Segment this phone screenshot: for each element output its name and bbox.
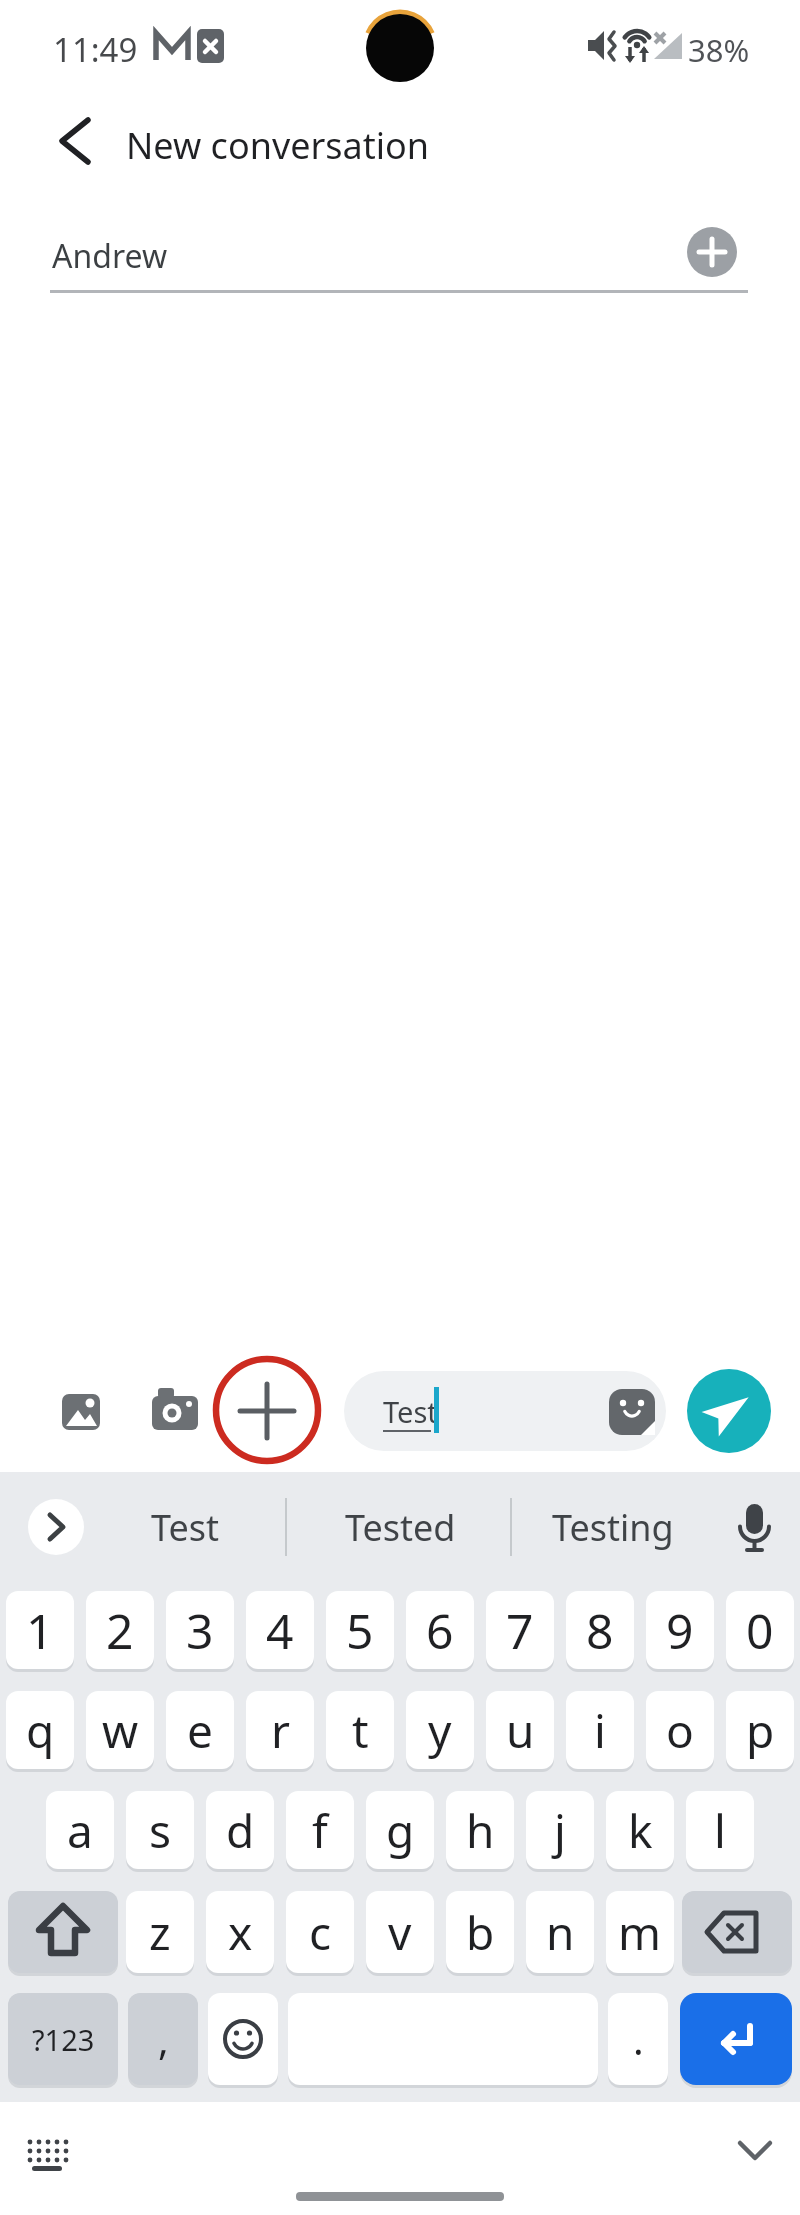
staticText: 4: [266, 1598, 294, 1663]
staticText: New conversation: [126, 121, 430, 170]
staticText: 1: [26, 1598, 54, 1663]
button[interactable]: w: [86, 1691, 154, 1769]
staticText: h: [466, 1799, 495, 1862]
staticText: Testing: [552, 1503, 674, 1552]
staticText: 8: [586, 1598, 614, 1663]
button[interactable]: 0: [726, 1591, 794, 1669]
button[interactable]: [44, 110, 108, 174]
button[interactable]: ?123: [8, 1993, 118, 2085]
button[interactable]: b: [446, 1891, 514, 1973]
button[interactable]: [28, 1499, 84, 1555]
staticText: Test: [383, 1392, 438, 1431]
button[interactable]: h: [446, 1791, 514, 1869]
staticText: r: [271, 1699, 290, 1762]
button[interactable]: i: [566, 1691, 634, 1769]
staticText: 9: [666, 1598, 694, 1663]
button[interactable]: f: [286, 1791, 354, 1869]
staticText: x: [228, 1901, 253, 1964]
button[interactable]: e: [166, 1691, 234, 1769]
staticText: g: [386, 1799, 415, 1862]
staticText: 0: [746, 1598, 774, 1663]
button[interactable]: s: [126, 1791, 194, 1869]
staticText: d: [226, 1799, 255, 1862]
button[interactable]: [208, 1993, 278, 2085]
button[interactable]: [149, 1386, 201, 1438]
staticText: ,: [158, 2012, 169, 2066]
button[interactable]: [680, 1993, 792, 2085]
staticText: f: [312, 1799, 328, 1862]
button[interactable]: 4: [246, 1591, 314, 1669]
button[interactable]: j: [526, 1791, 594, 1869]
button[interactable]: c: [286, 1891, 354, 1973]
button[interactable]: 2: [86, 1591, 154, 1669]
staticText: z: [149, 1901, 171, 1964]
button[interactable]: y: [406, 1691, 474, 1769]
button[interactable]: n: [526, 1891, 594, 1973]
button[interactable]: 8: [566, 1591, 634, 1669]
staticText: Andrew: [52, 234, 168, 278]
staticText: l: [714, 1799, 726, 1862]
button[interactable]: k: [606, 1791, 674, 1869]
staticText: t: [352, 1699, 369, 1762]
button[interactable]: [55, 1386, 107, 1438]
button[interactable]: 6: [406, 1591, 474, 1669]
button[interactable]: 3: [166, 1591, 234, 1669]
staticText: e: [187, 1699, 213, 1762]
staticText: 38%: [688, 29, 750, 71]
button[interactable]: 7: [486, 1591, 554, 1669]
staticText: b: [466, 1901, 495, 1964]
staticText: p: [746, 1699, 775, 1762]
staticText: a: [67, 1799, 93, 1862]
staticText: 11:49: [53, 27, 138, 72]
button[interactable]: [241, 1385, 293, 1437]
button[interactable]: t: [326, 1691, 394, 1769]
button[interactable]: Testing: [520, 1499, 705, 1555]
staticText: m: [618, 1901, 662, 1964]
button[interactable]: z: [126, 1891, 194, 1973]
button[interactable]: ,: [128, 1993, 198, 2085]
button[interactable]: 1: [6, 1591, 74, 1669]
staticText: ?123: [32, 2020, 95, 2059]
button[interactable]: d: [206, 1791, 274, 1869]
staticText: 5: [346, 1598, 374, 1663]
button[interactable]: l: [686, 1791, 754, 1869]
button[interactable]: m: [606, 1891, 674, 1973]
button[interactable]: q: [6, 1691, 74, 1769]
button[interactable]: g: [366, 1791, 434, 1869]
button[interactable]: [344, 1371, 666, 1451]
staticText: n: [546, 1901, 575, 1964]
staticText: c: [309, 1901, 332, 1964]
staticText: Tested: [345, 1503, 456, 1552]
staticText: 3: [186, 1598, 214, 1663]
button[interactable]: p: [726, 1691, 794, 1769]
button[interactable]: [687, 227, 737, 277]
staticText: q: [26, 1699, 55, 1762]
staticText: Test: [151, 1503, 220, 1552]
button[interactable]: o: [646, 1691, 714, 1769]
staticText: y: [428, 1699, 452, 1762]
button[interactable]: [730, 1499, 786, 1555]
button[interactable]: x: [206, 1891, 274, 1973]
staticText: i: [594, 1699, 606, 1762]
staticText: s: [149, 1799, 172, 1862]
button[interactable]: v: [366, 1891, 434, 1973]
button[interactable]: Test: [100, 1499, 270, 1555]
button[interactable]: .: [608, 1993, 668, 2085]
button[interactable]: 5: [326, 1591, 394, 1669]
button[interactable]: [682, 1891, 792, 1973]
button[interactable]: a: [46, 1791, 114, 1869]
button[interactable]: [687, 1369, 771, 1453]
staticText: o: [666, 1699, 694, 1762]
button[interactable]: u: [486, 1691, 554, 1769]
staticText: .: [633, 2012, 644, 2066]
staticText: u: [506, 1699, 535, 1762]
button[interactable]: [20, 2130, 76, 2186]
button[interactable]: [8, 1891, 118, 1973]
button[interactable]: Tested: [310, 1499, 490, 1555]
button[interactable]: [728, 2126, 784, 2176]
staticText: 7: [506, 1598, 534, 1663]
staticText: v: [388, 1901, 412, 1964]
button[interactable]: 9: [646, 1591, 714, 1669]
button[interactable]: r: [246, 1691, 314, 1769]
